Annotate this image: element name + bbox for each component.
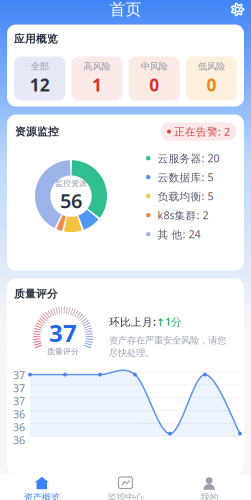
staticText: 云数据库: 5 [157, 170, 213, 184]
staticText: 应用概览 [14, 32, 58, 46]
staticText: 其 他: 24 [157, 227, 200, 241]
staticText: 0 [206, 73, 216, 96]
staticText: 尽快处理。 [109, 347, 154, 359]
staticText: 37 [49, 317, 77, 349]
staticText: 环比上月: [109, 315, 156, 329]
staticText: 0 [149, 73, 159, 96]
staticText: 1 [92, 73, 102, 96]
staticText: 资产存在严重安全风险，请您 [109, 335, 226, 346]
staticText: 36 [13, 420, 25, 434]
staticText: 37 [13, 394, 25, 408]
staticText: 37 [13, 368, 25, 382]
staticText: 36 [13, 433, 25, 447]
staticText: 我的 [200, 492, 218, 500]
staticText: k8s集群: 2 [157, 208, 208, 222]
staticText: 监控资源 [55, 178, 87, 188]
button[interactable]: 设置 [224, 0, 251, 22]
button[interactable]: 资产概览 [0, 476, 84, 500]
button[interactable]: 全部 [14, 56, 65, 100]
button[interactable]: 我的 [167, 476, 251, 500]
staticText: 12 [30, 73, 50, 96]
staticText: 37 [13, 381, 25, 395]
staticText: 36 [13, 407, 25, 421]
button[interactable]: 高风险 [71, 56, 122, 100]
staticText: 云服务器: 20 [157, 151, 219, 165]
staticText: 首页 [109, 0, 141, 19]
staticText: 监控中心 [107, 492, 143, 500]
staticText: 质量评分 [14, 287, 58, 301]
staticText: 资源监控 [15, 125, 59, 138]
staticText: 高风险 [83, 61, 110, 72]
staticText: 正在告警: 2 [174, 124, 230, 139]
button[interactable]: 监控中心 [84, 476, 167, 500]
staticText: 56 [60, 187, 82, 214]
staticText: 负载均衡: 5 [157, 189, 213, 203]
button[interactable]: 低风险 [186, 56, 237, 100]
staticText: ↑1分 [156, 315, 182, 329]
staticText: 低风险 [198, 61, 225, 72]
button[interactable]: 中风险 [128, 56, 180, 100]
staticText: 质量评分 [47, 347, 79, 356]
staticText: 资产概览 [24, 492, 60, 500]
staticText: 中风险 [141, 61, 168, 72]
staticText: 全部 [31, 61, 49, 72]
